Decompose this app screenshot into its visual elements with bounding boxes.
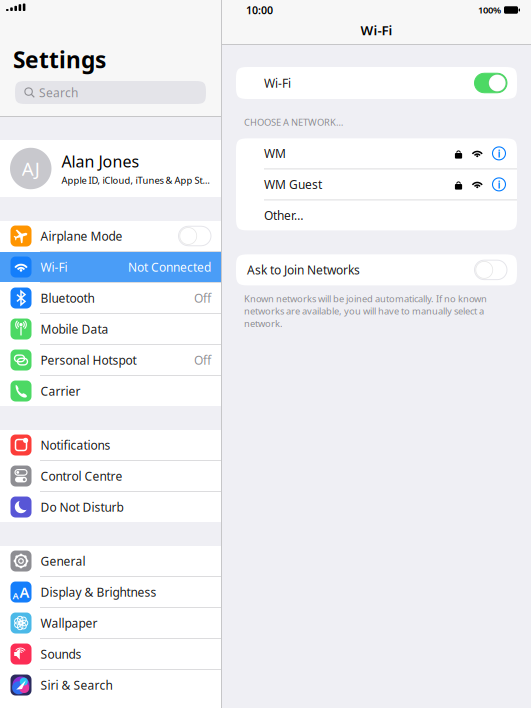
button[interactable]: Siri & Search <box>0 670 221 700</box>
button[interactable]: Bluetooth <box>0 283 221 313</box>
staticText: Known networks will be joined automatica… <box>244 292 487 330</box>
staticText: AJ <box>22 156 40 181</box>
button[interactable]: Carrier <box>0 376 221 406</box>
staticText: Personal Hotspot <box>40 352 136 368</box>
staticText: Search <box>39 84 78 100</box>
staticText: Apple ID, iCloud, iTunes & App St… <box>61 174 209 186</box>
staticText: General <box>40 553 85 569</box>
button[interactable]: Notifications <box>0 430 221 460</box>
button[interactable]: WM Guest <box>236 169 517 199</box>
staticText: Do Not Disturb <box>40 499 123 515</box>
staticText: i <box>497 177 500 191</box>
staticText: Sounds <box>40 646 81 662</box>
staticText: A <box>19 582 29 602</box>
staticText: Not Connected <box>128 259 211 275</box>
staticText: A <box>12 589 18 602</box>
staticText: Bluetooth <box>40 290 94 306</box>
staticText: Control Centre <box>40 468 122 484</box>
button[interactable]: General <box>0 546 221 576</box>
staticText: i <box>497 146 500 160</box>
staticText: Alan Jones <box>61 151 139 172</box>
staticText: WM Guest <box>264 176 322 192</box>
staticText: Display & Brightness <box>40 584 156 600</box>
button[interactable]: A <box>0 577 221 607</box>
button[interactable]: Sounds <box>0 639 221 669</box>
button[interactable]: Do Not Disturb <box>0 492 221 522</box>
button[interactable]: WM <box>236 138 517 168</box>
button[interactable]: Wi-Fi <box>0 252 221 282</box>
staticText: Mobile Data <box>40 321 108 337</box>
staticText: Wallpaper <box>40 615 97 631</box>
staticText: Wi-Fi <box>264 75 291 91</box>
staticText: Airplane Mode <box>40 228 122 244</box>
staticText: WM <box>264 145 286 161</box>
staticText: CHOOSE A NETWORK… <box>244 116 343 128</box>
staticText: 10:00 <box>246 3 273 17</box>
button[interactable]: AJ <box>0 140 221 197</box>
staticText: Ask to Join Networks <box>247 262 360 278</box>
staticText: Off <box>194 290 211 306</box>
staticText: Other… <box>264 207 303 223</box>
button[interactable]: Wallpaper <box>0 608 221 638</box>
staticText: Siri & Search <box>40 677 112 693</box>
button[interactable]: Personal Hotspot <box>0 345 221 375</box>
staticText: Wi-Fi <box>360 21 392 39</box>
staticText: Off <box>194 352 211 368</box>
button[interactable]: Control Centre <box>0 461 221 491</box>
staticText: 100% <box>478 4 501 16</box>
staticText: Carrier <box>40 383 80 399</box>
button[interactable]: Search <box>0 72 221 104</box>
button[interactable]: Airplane Mode <box>0 221 221 251</box>
staticText: Notifications <box>40 437 110 453</box>
button[interactable]: Other… <box>236 200 517 230</box>
button[interactable]: Mobile Data <box>0 314 221 344</box>
staticText: Settings <box>13 44 106 74</box>
staticText: Wi-Fi <box>40 259 67 275</box>
